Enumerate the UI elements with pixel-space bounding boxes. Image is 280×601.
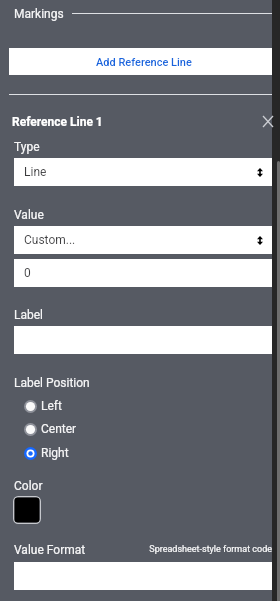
staticText: Reference Line 1 — [12, 115, 103, 129]
staticText: Label — [14, 308, 44, 322]
staticText: Value — [14, 208, 44, 222]
staticText: Label Position — [14, 376, 90, 390]
button[interactable]: Custom... — [14, 226, 272, 254]
staticText: Color — [14, 479, 43, 493]
staticText: Center — [41, 422, 77, 436]
staticText: Right — [41, 446, 69, 460]
button[interactable]: 0 — [14, 259, 272, 287]
staticText: Left — [41, 399, 62, 413]
staticText: Custom... — [24, 233, 76, 247]
button[interactable]: Left — [0, 395, 272, 417]
staticText: Markings — [14, 7, 64, 21]
staticText: Type — [14, 140, 40, 154]
staticText: Line — [24, 165, 47, 179]
button[interactable]: Center — [0, 418, 272, 440]
button[interactable]: Choose color — [13, 496, 41, 524]
staticText: 0 — [24, 266, 31, 280]
button[interactable]: Line — [14, 158, 272, 186]
staticText: Add Reference Line — [96, 56, 192, 69]
button[interactable]: Right — [0, 442, 272, 464]
button[interactable]: Add Reference Line — [9, 48, 272, 75]
staticText: Value Format — [14, 543, 86, 557]
staticText: Spreadsheet-style format code — [140, 544, 272, 555]
button[interactable]: Close — [258, 112, 277, 131]
